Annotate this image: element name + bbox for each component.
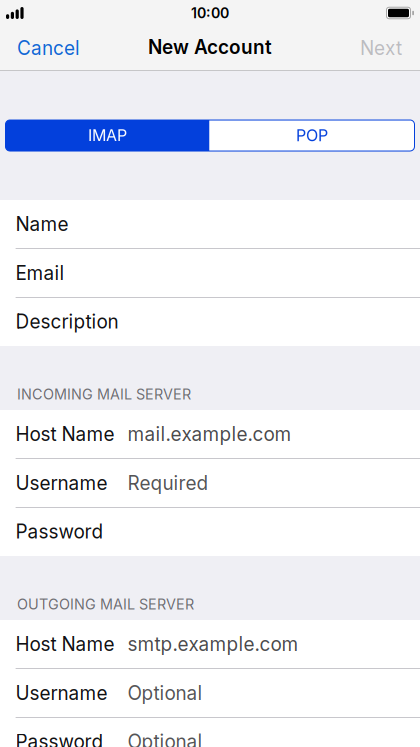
staticText: Username bbox=[16, 471, 108, 494]
staticText: 10:00 bbox=[191, 4, 229, 21]
staticText: New Account bbox=[148, 35, 272, 58]
staticText: Password bbox=[16, 520, 104, 543]
staticText: Required bbox=[127, 471, 208, 494]
staticText: Name bbox=[16, 212, 69, 235]
button[interactable]: Password bbox=[0, 718, 420, 747]
button[interactable]: Username bbox=[0, 459, 420, 508]
button[interactable]: Host Name bbox=[0, 410, 420, 459]
staticText: mail.example.com bbox=[127, 422, 291, 445]
staticText: Next bbox=[360, 36, 402, 59]
button[interactable]: Cancel bbox=[0, 26, 92, 70]
staticText: IMAP bbox=[88, 126, 127, 145]
button[interactable]: Description bbox=[0, 298, 420, 346]
staticText: smtp.example.com bbox=[127, 632, 298, 655]
button[interactable]: Password bbox=[0, 508, 420, 556]
staticText: Username bbox=[16, 681, 108, 704]
button[interactable]: Username bbox=[0, 669, 420, 718]
staticText: OUTGOING MAIL SERVER bbox=[17, 596, 194, 613]
staticText: Description bbox=[16, 310, 119, 333]
button[interactable]: Host Name bbox=[0, 620, 420, 669]
button[interactable]: Next bbox=[348, 26, 420, 70]
staticText: Optional bbox=[127, 730, 202, 747]
staticText: Optional bbox=[127, 681, 202, 704]
staticText: POP bbox=[296, 126, 328, 145]
button[interactable]: IMAP bbox=[5, 120, 209, 151]
button[interactable]: Email bbox=[0, 249, 420, 298]
staticText: Host Name bbox=[16, 632, 115, 655]
staticText: Email bbox=[16, 261, 65, 284]
staticText: Cancel bbox=[17, 36, 80, 59]
staticText: Password bbox=[16, 730, 104, 747]
button[interactable]: Name bbox=[0, 200, 420, 249]
staticText: Host Name bbox=[16, 422, 115, 445]
staticText: INCOMING MAIL SERVER bbox=[17, 386, 191, 403]
button[interactable]: POP bbox=[209, 120, 414, 151]
